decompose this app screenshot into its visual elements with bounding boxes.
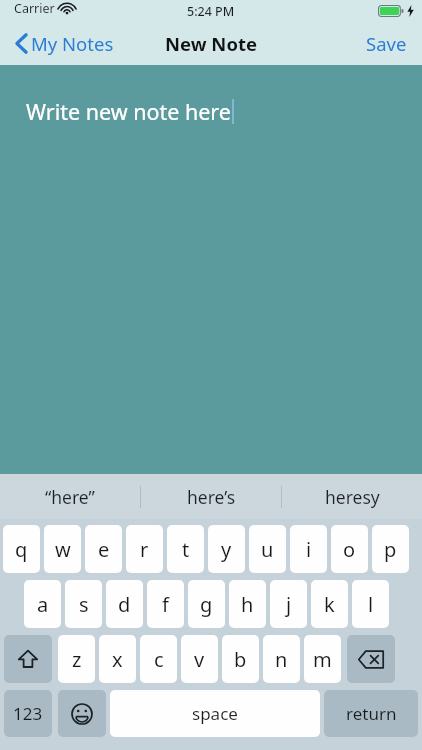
button[interactable]: Emoji [58,690,106,737]
button[interactable]: q [3,525,40,573]
staticText: t [182,536,190,563]
staticText: l [368,591,374,618]
button[interactable]: Backspace [347,635,395,683]
button[interactable]: “here” [0,474,140,519]
staticText: x [112,646,123,673]
staticText: d [118,591,131,618]
staticText: e [98,536,110,563]
button[interactable]: b [222,635,259,683]
button[interactable]: r [126,525,163,573]
staticText: m [313,646,332,673]
staticText: w [55,536,71,563]
button[interactable]: x [99,635,136,683]
staticText: q [15,536,28,563]
button[interactable]: z [58,635,95,683]
button[interactable]: here’s [141,474,281,519]
button[interactable]: u [249,525,286,573]
button[interactable]: t [167,525,204,573]
button[interactable]: j [270,580,307,628]
staticText: c [154,646,164,673]
staticText: My Notes [31,31,114,56]
staticText: k [324,591,335,618]
staticText: return [346,702,397,725]
button[interactable]: n [263,635,300,683]
button[interactable]: Save [362,27,411,60]
staticText: p [384,536,397,563]
button[interactable]: a [24,580,61,628]
staticText: heresy [325,485,380,509]
staticText: h [241,591,254,618]
staticText: Save [366,31,407,56]
staticText: 123 [13,702,43,725]
staticText: New Note [165,31,258,56]
staticText: v [194,646,205,673]
staticText: Write new note here [26,97,231,126]
button[interactable]: d [106,580,143,628]
staticText: g [200,591,213,618]
button[interactable]: y [208,525,245,573]
button[interactable]: w [44,525,81,573]
button[interactable]: p [372,525,409,573]
staticText: “here” [45,485,95,509]
staticText: space [192,702,238,725]
button[interactable]: 123 [4,690,52,737]
button[interactable]: o [331,525,368,573]
staticText: f [162,591,169,618]
staticText: o [343,536,356,563]
button[interactable]: i [290,525,327,573]
button[interactable]: return [324,690,418,737]
staticText: z [72,646,82,673]
button[interactable]: s [65,580,102,628]
button[interactable]: Shift [4,635,52,683]
button[interactable]: m [304,635,341,683]
staticText: here’s [187,485,236,509]
button[interactable]: Write new note here [0,65,422,474]
staticText: j [286,591,292,618]
button[interactable]: k [311,580,348,628]
staticText: a [37,591,49,618]
staticText: s [79,591,89,618]
button[interactable]: v [181,635,218,683]
button[interactable]: f [147,580,184,628]
staticText: b [234,646,247,673]
staticText: Carrier [14,0,55,17]
button[interactable]: space [110,690,320,737]
staticText: 5:24 PM [187,3,235,20]
button[interactable]: h [229,580,266,628]
button[interactable]: g [188,580,225,628]
staticText: n [275,646,288,673]
button[interactable]: l [352,580,389,628]
staticText: r [140,536,149,563]
button[interactable]: c [140,635,177,683]
button[interactable]: e [85,525,122,573]
button[interactable]: heresy [282,474,422,519]
button[interactable]: My Notes [13,27,117,60]
staticText: i [306,536,312,563]
staticText: u [261,536,274,563]
staticText: y [221,536,232,563]
